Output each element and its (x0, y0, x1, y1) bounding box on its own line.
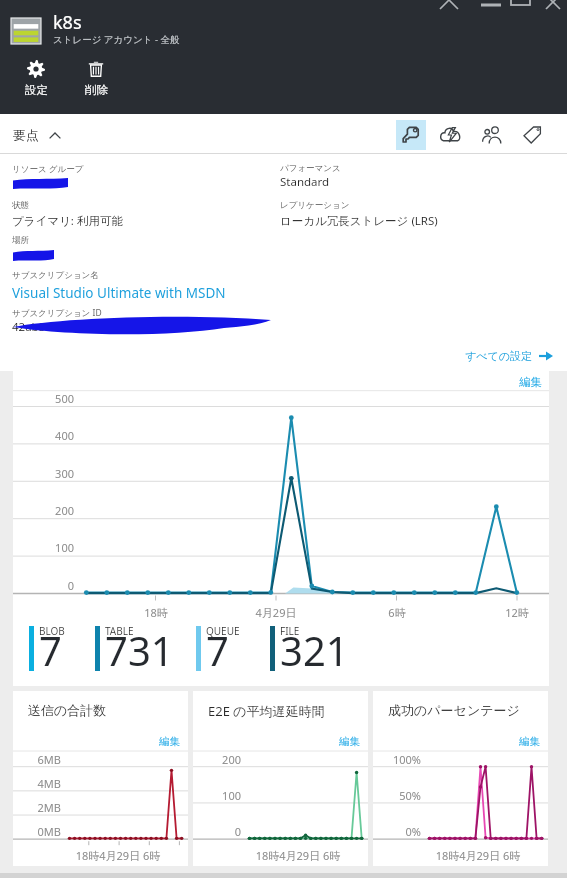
button[interactable]: 編集 (519, 375, 542, 389)
staticText: BLOB (39, 624, 65, 638)
staticText: 0MB (13, 824, 61, 839)
staticText: TABLE (105, 624, 134, 638)
staticText: 編集 (159, 735, 180, 748)
staticText: ローカル冗長ストレージ (LRS) (280, 213, 438, 229)
button[interactable]: Access control (477, 120, 507, 150)
button[interactable]: 削除 (69, 60, 123, 97)
button[interactable]: Keys (396, 120, 426, 150)
button[interactable]: FILE (270, 621, 349, 683)
staticText: 4月29日 (241, 605, 311, 620)
staticText: 編集 (519, 375, 542, 389)
staticText: 送信の合計数 (28, 702, 107, 718)
staticText: 編集 (519, 735, 540, 748)
staticText: 0% (373, 824, 421, 839)
staticText: 200 (17, 503, 74, 518)
staticText: サブスクリプション名 (12, 270, 99, 281)
staticText: 0 (17, 578, 74, 593)
staticText: 12時 (482, 605, 552, 620)
staticText: 18時4月29日 6時 (413, 848, 543, 863)
staticText: k8s (53, 10, 82, 35)
button[interactable]: 編集 (339, 735, 360, 748)
staticText: 300 (17, 466, 74, 481)
staticText: 200 (193, 752, 241, 767)
staticText: レプリケーション (280, 200, 350, 211)
staticText: 場所 (12, 235, 29, 246)
button[interactable]: Monitoring (436, 120, 466, 150)
staticText: 6MB (13, 752, 61, 767)
staticText: 編集 (339, 735, 360, 748)
staticText: 成功のパーセンテージ (388, 702, 520, 718)
staticText: 18時4月29日 6時 (233, 848, 363, 863)
staticText: サブスクリプション ID (12, 307, 102, 319)
staticText: リソース グループ (12, 163, 84, 175)
button[interactable]: 編集 (159, 735, 180, 748)
button[interactable]: TABLE (95, 621, 174, 683)
staticText: 18時4月29日 6時 (53, 848, 183, 863)
button[interactable]: Visual Studio Ultimate with MSDN (12, 284, 226, 302)
staticText: 50% (373, 788, 421, 803)
button[interactable]: BLOB (29, 621, 65, 683)
button[interactable]: Tags (517, 120, 547, 150)
staticText: E2E の平均遅延時間 (208, 702, 325, 720)
staticText: 設定 (25, 83, 48, 97)
staticText: 400 (17, 428, 74, 443)
staticText: 500 (17, 391, 74, 406)
staticText: 321 (280, 623, 349, 671)
staticText: ストレージ アカウント - 全般 (53, 33, 180, 46)
staticText: 状態 (12, 200, 29, 211)
staticText: 0 (193, 824, 241, 839)
staticText: 731 (105, 623, 174, 671)
staticText: 7 (39, 623, 62, 671)
button[interactable]: 設定 (9, 60, 63, 97)
staticText: 削除 (85, 83, 108, 97)
staticText: 100 (17, 540, 74, 555)
button[interactable]: すべての設定 (465, 349, 553, 363)
staticText: 6時 (362, 605, 432, 620)
button[interactable]: 要点 (0, 114, 567, 153)
staticText: 100 (193, 788, 241, 803)
staticText: 100% (373, 752, 421, 767)
staticText: プライマリ: 利用可能 (12, 213, 123, 229)
button[interactable]: QUEUE (196, 621, 240, 683)
staticText: Standard (280, 174, 330, 190)
staticText: すべての設定 (465, 349, 533, 363)
button[interactable]: 編集 (519, 735, 540, 748)
staticText: 要点 (13, 127, 39, 143)
staticText: パフォーマンス (280, 163, 341, 174)
staticText: 4MB (13, 776, 61, 791)
staticText: 42ab3ca2-4a9f (12, 319, 92, 335)
staticText: 18時 (121, 605, 191, 620)
staticText: FILE (280, 624, 300, 638)
staticText: 7 (206, 623, 229, 671)
staticText: 2MB (13, 800, 61, 815)
staticText: QUEUE (206, 624, 240, 638)
